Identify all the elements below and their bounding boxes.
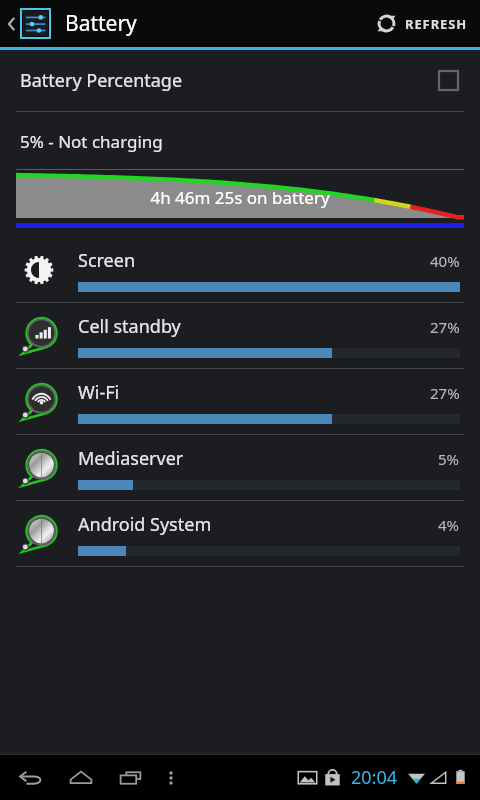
other: Cellular signal xyxy=(429,768,448,787)
button[interactable]: Back xyxy=(12,759,50,797)
button[interactable]: Recent apps xyxy=(112,759,150,797)
staticText: 4% xyxy=(438,515,460,535)
button[interactable]: Cell standby xyxy=(0,303,480,368)
staticText: Battery Percentage xyxy=(20,68,183,93)
button[interactable]: More options xyxy=(154,761,188,795)
button[interactable]: Android System xyxy=(0,501,480,566)
staticText: Android System xyxy=(78,512,212,537)
staticText: Cell standby xyxy=(78,314,181,339)
staticText: 5% xyxy=(438,449,460,469)
button[interactable]: Battery Percentage xyxy=(0,50,480,111)
staticText: Mediaserver xyxy=(78,446,184,471)
staticText: 5% - Not charging xyxy=(20,130,163,153)
staticText: REFRESH xyxy=(405,15,468,33)
staticText: 4h 46m 25s on battery xyxy=(150,186,330,209)
button[interactable]: Wi-Fi xyxy=(0,369,480,434)
staticText: 20:04 xyxy=(351,765,398,790)
button[interactable]: REFRESH xyxy=(363,0,480,47)
staticText: 40% xyxy=(430,251,460,271)
staticText: Wi-Fi xyxy=(78,380,120,405)
button[interactable]: Mediaserver xyxy=(0,435,480,500)
other: Wi-Fi signal xyxy=(407,768,426,787)
staticText: Battery xyxy=(65,9,137,38)
other: Screenshot captured xyxy=(297,767,318,788)
staticText: 27% xyxy=(430,317,460,337)
staticText: Screen xyxy=(78,248,136,273)
other: Battery level xyxy=(451,768,470,787)
staticText: 27% xyxy=(430,383,460,403)
button[interactable]: Home xyxy=(62,759,100,797)
button[interactable]: Navigate up xyxy=(0,0,56,47)
other: Play Store update xyxy=(323,768,342,787)
button[interactable]: Screen xyxy=(0,237,480,302)
